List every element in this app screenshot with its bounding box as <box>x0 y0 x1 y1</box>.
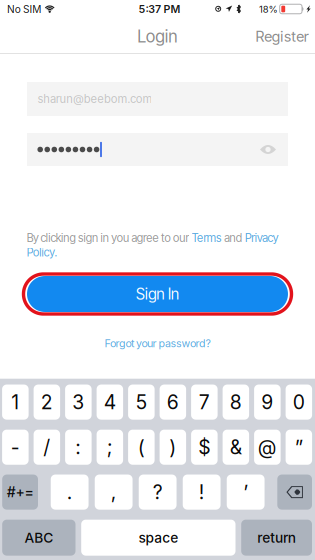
staticText: Register <box>255 28 308 45</box>
staticText: and <box>222 231 245 245</box>
staticText: ABC <box>24 529 53 546</box>
button[interactable]: Forgot your password? <box>100 333 214 354</box>
button[interactable]: space <box>81 520 235 556</box>
button[interactable]: : <box>65 430 92 465</box>
button[interactable]: 1 <box>2 385 29 420</box>
button[interactable]: 6 <box>160 385 186 420</box>
button[interactable]: Policy. <box>26 246 57 259</box>
button[interactable]: Register <box>255 20 315 53</box>
staticText: , <box>111 480 117 504</box>
button[interactable]: / <box>34 430 60 465</box>
staticText: 18% <box>259 3 278 15</box>
staticText: ” <box>295 435 303 459</box>
staticText: $ <box>198 435 210 459</box>
staticText: Policy. <box>26 246 57 259</box>
staticText: / <box>43 435 50 459</box>
staticText: No SIM <box>7 3 41 15</box>
staticText: 3 <box>72 390 84 414</box>
staticText: return <box>257 529 296 546</box>
staticText: Terms <box>192 231 222 245</box>
button[interactable]: ) <box>160 430 186 465</box>
staticText: By clicking sign in you agree to our <box>26 231 192 245</box>
button[interactable]: - <box>2 430 29 465</box>
staticText: 4 <box>104 390 116 414</box>
button[interactable]: return <box>241 520 312 556</box>
button[interactable]: & <box>223 430 249 465</box>
staticText: - <box>11 435 20 459</box>
button[interactable]: ’ <box>227 475 265 510</box>
staticText: ; <box>107 435 113 459</box>
button[interactable]: #+= <box>2 475 38 510</box>
staticText: #+= <box>7 484 33 500</box>
staticText: ( <box>138 435 145 459</box>
staticText: space <box>138 529 178 546</box>
staticText: 5:37 PM <box>139 3 180 16</box>
staticText: ! <box>199 480 205 504</box>
staticText: 9 <box>261 390 273 414</box>
staticText: : <box>75 435 81 459</box>
button[interactable]: 7 <box>191 385 218 420</box>
button[interactable]: ! <box>183 475 221 510</box>
staticText: @ <box>258 435 277 459</box>
staticText: 1 <box>11 390 19 414</box>
button[interactable]: . <box>51 475 89 510</box>
button[interactable]: ; <box>97 430 123 465</box>
button[interactable]: @ <box>254 430 281 465</box>
button[interactable]: ( <box>128 430 155 465</box>
staticText: 2 <box>41 390 53 414</box>
button[interactable]: , <box>95 475 133 510</box>
button[interactable]: Login <box>127 19 188 54</box>
staticText: Privacy <box>245 231 278 245</box>
button[interactable]: Show password <box>255 140 281 159</box>
button[interactable]: Sign In <box>21 272 293 316</box>
staticText: sharun@beebom.com <box>37 92 152 106</box>
staticText: Forgot your password? <box>104 337 210 350</box>
staticText: 6 <box>167 390 179 414</box>
staticText: ’ <box>243 480 248 504</box>
button[interactable]: Privacy <box>245 231 278 245</box>
staticText: & <box>230 435 242 459</box>
button[interactable]: Delete <box>277 475 312 510</box>
button[interactable]: ABC <box>2 520 75 556</box>
button[interactable]: 0 <box>286 385 312 420</box>
button[interactable]: 8 <box>223 385 249 420</box>
staticText: 7 <box>199 390 210 414</box>
button[interactable]: 9 <box>254 385 281 420</box>
staticText: 0 <box>293 390 305 414</box>
button[interactable]: 4 <box>97 385 123 420</box>
staticText: 5 <box>136 390 147 414</box>
button[interactable]: ” <box>286 430 312 465</box>
staticText: Login <box>137 26 178 47</box>
staticText: . <box>67 480 73 504</box>
button[interactable]: Terms <box>192 231 222 245</box>
staticText: ) <box>169 435 176 459</box>
button[interactable]: $ <box>191 430 218 465</box>
staticText: 8 <box>230 390 242 414</box>
staticText: Sign In <box>135 285 180 303</box>
staticText: ? <box>153 480 163 504</box>
button[interactable]: 2 <box>34 385 60 420</box>
button[interactable]: ? <box>139 475 177 510</box>
button[interactable]: 3 <box>65 385 92 420</box>
button[interactable]: 5 <box>128 385 155 420</box>
